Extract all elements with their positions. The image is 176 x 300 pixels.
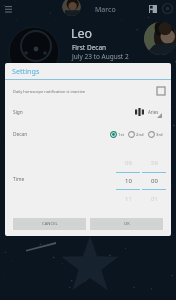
button[interactable]: Account (161, 2, 174, 15)
button[interactable]: Aries (135, 107, 159, 117)
staticText: First Decan (72, 43, 107, 52)
staticText: 3rd (156, 132, 163, 138)
staticText: Decan (13, 131, 28, 138)
button[interactable]: 1st (110, 131, 124, 138)
staticText: CANCEL (42, 221, 58, 227)
staticText: 09 (125, 159, 132, 167)
staticText: Daily horoscope notification is inactive (13, 89, 85, 94)
button[interactable]: Facebook (146, 2, 160, 16)
staticText: 2nd (136, 132, 144, 138)
staticText: 11 (125, 195, 132, 203)
button[interactable]: Menu (0, 1, 16, 17)
button[interactable]: Daily horoscope notification is inactive (5, 84, 171, 98)
staticText: Leo (71, 25, 93, 42)
staticText: 01 (151, 195, 158, 203)
staticText: Aries (148, 109, 159, 115)
staticText: 10 (125, 177, 132, 185)
staticText: Settings (12, 66, 40, 76)
staticText: OK (124, 221, 130, 227)
button[interactable]: 2nd (128, 131, 144, 138)
button[interactable]: CANCEL (13, 218, 86, 230)
staticText: 00 (151, 177, 158, 185)
staticText: Marco (95, 5, 116, 15)
staticText: 59 (151, 159, 158, 167)
staticText: Sign (13, 109, 23, 116)
button[interactable]: 3rd (148, 131, 163, 138)
button[interactable]: OK (90, 218, 163, 230)
staticText: July 23 to August 2 (72, 52, 129, 61)
staticText: Time (13, 176, 25, 183)
staticText: 1st (118, 132, 124, 138)
